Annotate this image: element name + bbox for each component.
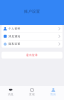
button[interactable]: 消息通知 (1, 33, 62, 40)
button[interactable]: 个人资料 (1, 25, 62, 32)
button[interactable]: 隐私设置 (1, 40, 62, 48)
staticText: 个人资料 (8, 27, 20, 30)
button[interactable]: 消息 (0, 86, 21, 100)
staticText: 消息通知 (8, 35, 20, 38)
button[interactable]: 退出登录 (1, 52, 62, 59)
staticText: 隐私设置 (8, 42, 20, 46)
button[interactable]: 我的 (43, 86, 64, 100)
staticText: 发现 (29, 93, 35, 96)
staticText: 消息 (8, 93, 14, 96)
staticText: 账户设置 (24, 9, 40, 14)
staticText: 我的 (50, 93, 56, 96)
staticText: 退出登录 (26, 53, 38, 57)
button[interactable]: 发现 (21, 86, 43, 100)
